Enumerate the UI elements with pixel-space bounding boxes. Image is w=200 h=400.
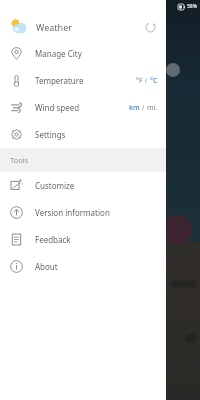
staticText: About	[35, 261, 58, 272]
staticText: Customize	[35, 180, 75, 191]
button[interactable]: Manage City	[0, 40, 166, 67]
staticText: km	[129, 103, 140, 113]
staticText: Wind speed	[35, 102, 80, 113]
staticText: Settings	[35, 129, 66, 140]
staticText: /	[140, 103, 147, 113]
staticText: /	[143, 76, 150, 86]
button[interactable]: Refresh	[142, 19, 158, 35]
button[interactable]: Customize	[0, 172, 166, 199]
staticText: Feedback	[35, 234, 71, 245]
button[interactable]: About	[0, 253, 166, 280]
staticText: Weather	[36, 21, 72, 33]
button[interactable]: Feedback	[0, 226, 166, 253]
button[interactable]: Version information	[0, 199, 166, 226]
staticText: Temperature	[35, 75, 84, 86]
staticText: 58%	[187, 3, 197, 10]
staticText: °C	[150, 76, 158, 86]
button[interactable]: Wind speed	[0, 94, 166, 121]
staticText: Version information	[35, 207, 110, 218]
staticText: °F	[136, 76, 143, 86]
staticText: Manage City	[35, 48, 82, 59]
button[interactable]: Settings	[0, 121, 166, 148]
button[interactable]: Weather	[0, 13, 166, 40]
staticText: mi.	[147, 103, 158, 113]
staticText: Tools	[10, 155, 29, 165]
button[interactable]: Temperature	[0, 67, 166, 94]
